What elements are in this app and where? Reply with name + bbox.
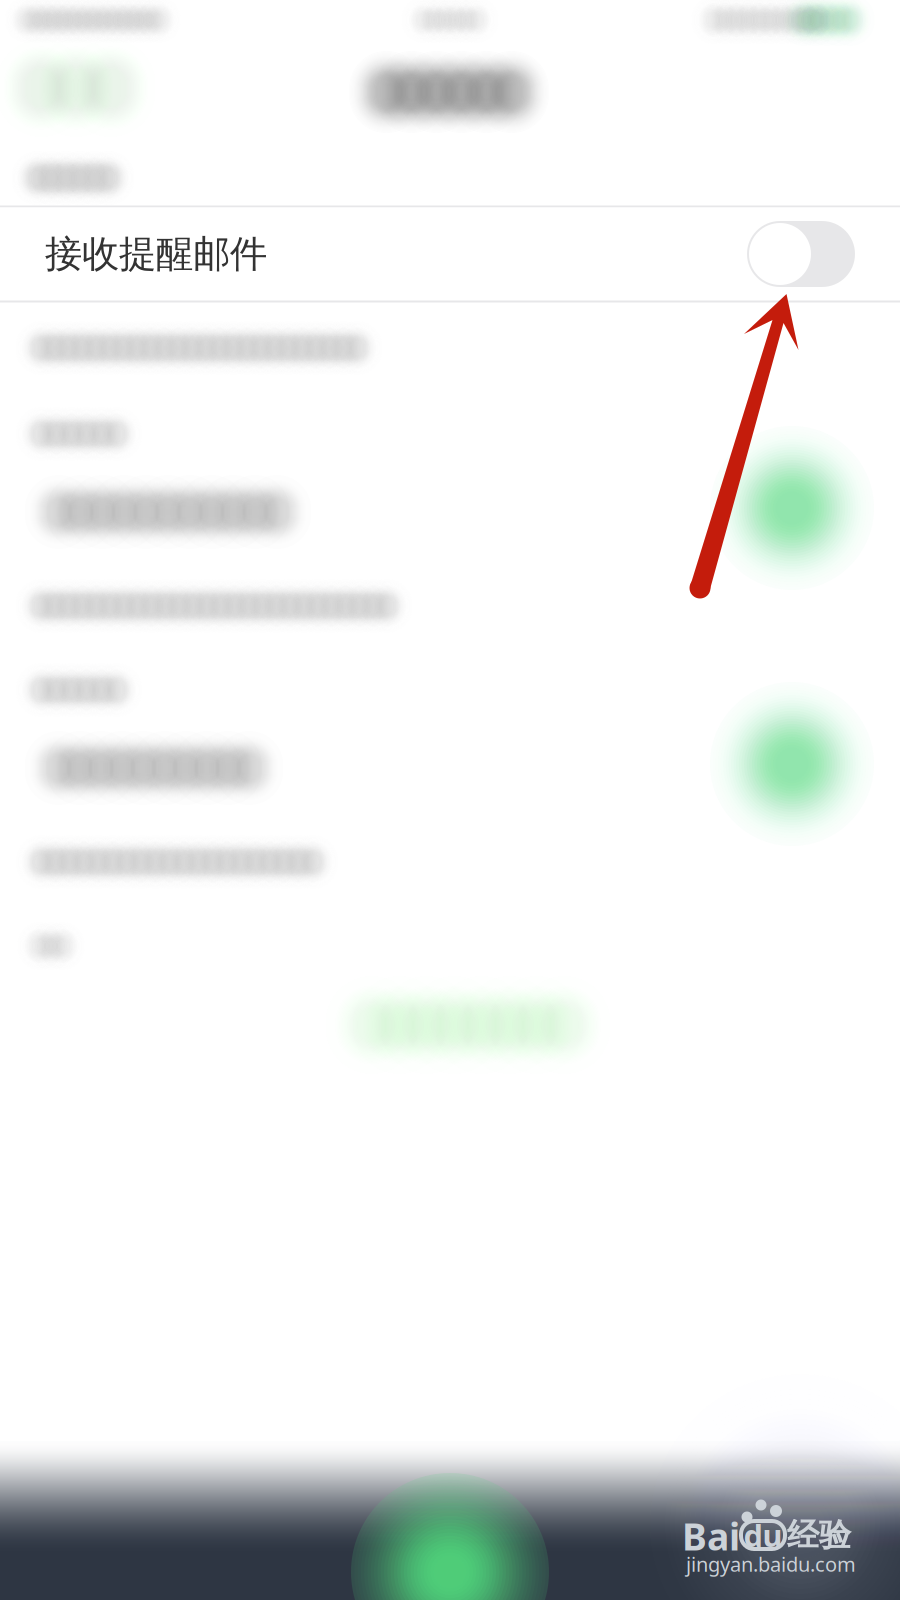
staticText: 接收提醒邮件 <box>45 231 267 277</box>
button[interactable]: 接收提醒邮件 <box>0 207 900 300</box>
staticText: 经验 <box>787 1515 851 1555</box>
staticText: jingyan.baidu.com <box>686 1551 856 1577</box>
staticText: Bai <box>682 1511 740 1561</box>
staticText: du <box>743 1515 782 1555</box>
